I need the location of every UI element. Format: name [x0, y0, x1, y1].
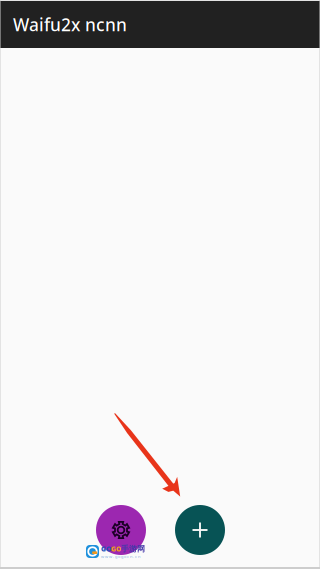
staticText: GO: [111, 544, 121, 553]
staticText: 手游网: [121, 544, 145, 554]
staticText: GO: [101, 544, 111, 553]
button[interactable]: Add: [175, 505, 225, 555]
button[interactable]: Settings: [96, 505, 146, 555]
staticText: Waifu2x ncnn: [13, 13, 127, 36]
staticText: w w w . g o g o c n . c n: [101, 554, 140, 559]
